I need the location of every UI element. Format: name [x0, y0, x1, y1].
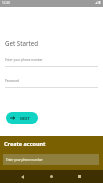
button[interactable]: Home	[43, 170, 60, 183]
staticText: NEXT	[20, 116, 30, 121]
button[interactable]: Back	[14, 170, 31, 183]
staticText: Password	[5, 79, 19, 83]
button[interactable]: Enter your phone number	[3, 154, 99, 165]
staticText: Create account	[4, 140, 46, 147]
button[interactable]: Recents	[71, 170, 88, 183]
staticText: Get Started	[5, 39, 39, 47]
staticText: Enter your phone number	[5, 58, 43, 62]
staticText: Enter your phone number	[6, 158, 43, 162]
staticText: 12:35	[2, 1, 11, 5]
button[interactable]: NEXT	[6, 112, 38, 124]
